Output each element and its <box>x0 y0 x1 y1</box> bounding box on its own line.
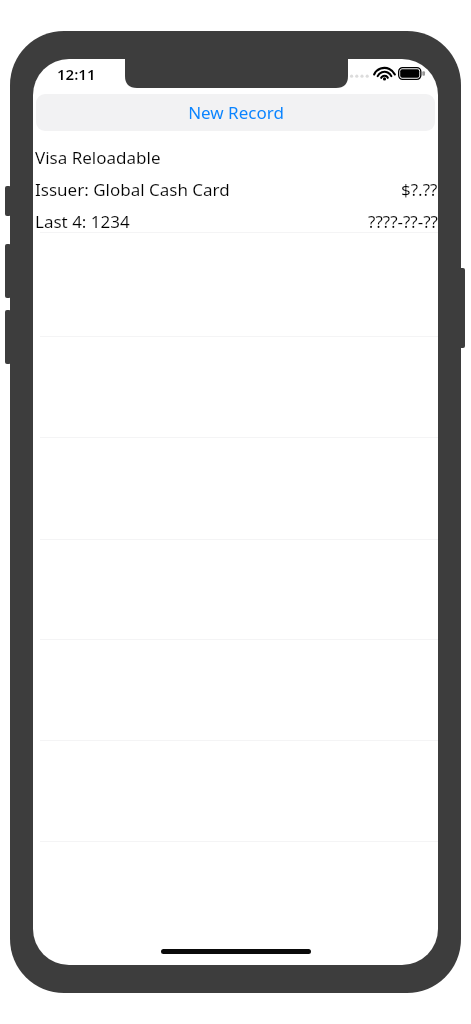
button[interactable]: New Record <box>36 94 435 131</box>
other: Wi-Fi <box>376 67 393 80</box>
staticText: 12:11 <box>57 64 96 84</box>
staticText: Last 4: 1234 <box>35 210 130 233</box>
staticText: Issuer: Global Cash Card <box>35 178 230 201</box>
staticText: $?.?? <box>401 178 438 201</box>
staticText: New Record <box>188 101 284 124</box>
button[interactable]: Visa Reloadable <box>33 141 438 173</box>
button[interactable]: Issuer: Global Cash Card <box>33 173 438 205</box>
staticText: ????-??-?? <box>368 210 438 233</box>
other: Battery full <box>398 67 425 80</box>
staticText: Visa Reloadable <box>35 146 161 169</box>
other: Cellular signal <box>350 69 371 79</box>
button[interactable]: Last 4: 1234 <box>33 205 438 237</box>
